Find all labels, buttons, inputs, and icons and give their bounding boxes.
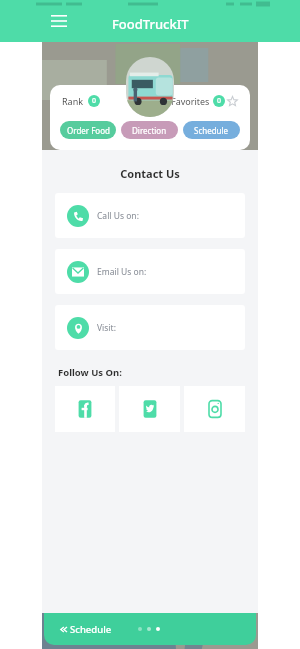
button[interactable]: Order Food — [60, 121, 116, 139]
staticText: Schedule — [194, 125, 229, 136]
staticText: FoodTruckIT — [112, 15, 189, 33]
staticText: 0 — [217, 96, 222, 106]
button[interactable]: Direction — [121, 121, 178, 139]
button[interactable]: Visit: — [55, 305, 245, 350]
staticText: Call Us on: — [97, 210, 139, 222]
button[interactable]: Rank — [62, 95, 100, 107]
staticText: Rank — [62, 95, 84, 107]
button[interactable]: Facebook — [55, 386, 115, 432]
button[interactable]: Schedule — [44, 613, 256, 645]
staticText: Direction — [132, 125, 167, 136]
button[interactable]: Favorites — [171, 95, 238, 107]
button[interactable]: Call Us on: — [55, 193, 245, 238]
staticText: Schedule — [70, 623, 112, 636]
other: Favorite — [227, 96, 238, 107]
button[interactable]: Food truck photo — [126, 57, 174, 117]
button[interactable]: Instagram — [184, 386, 245, 432]
staticText: Visit: — [97, 322, 116, 334]
staticText: Order Food — [67, 125, 110, 136]
staticText: 0 — [92, 96, 97, 106]
staticText: Favorites — [171, 95, 210, 107]
button[interactable]: Schedule — [183, 121, 240, 139]
staticText: Email Us on: — [97, 266, 147, 278]
button[interactable]: Menu — [46, 8, 72, 34]
staticText: Contact Us — [42, 166, 258, 181]
button[interactable]: Email Us on: — [55, 249, 245, 294]
staticText: Follow Us On: — [58, 366, 258, 379]
button[interactable]: Twitter — [119, 386, 180, 432]
